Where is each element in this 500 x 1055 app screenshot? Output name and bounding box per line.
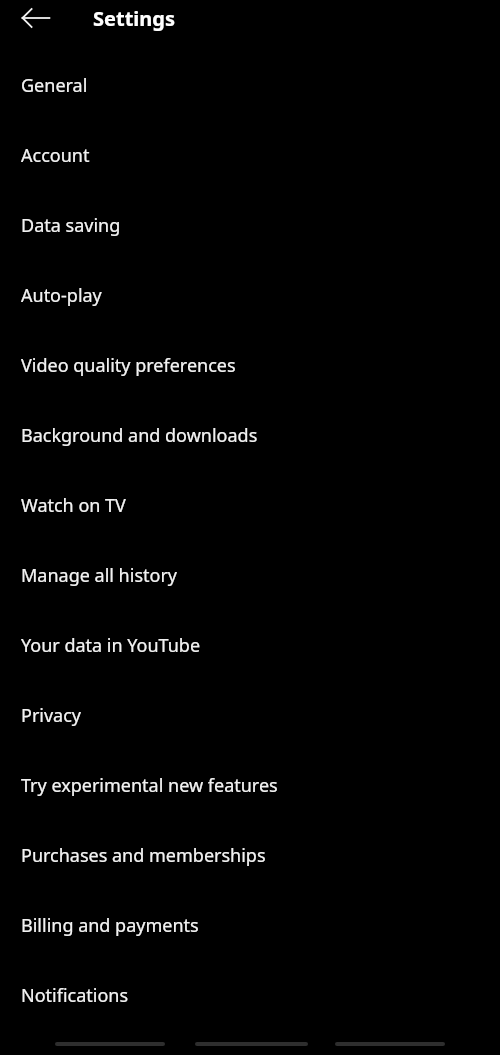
- button[interactable]: Your data in YouTube: [0, 610, 500, 680]
- button[interactable]: Privacy: [0, 680, 500, 750]
- button[interactable]: Watch on TV: [0, 470, 500, 540]
- button[interactable]: Background and downloads: [0, 400, 500, 470]
- button[interactable]: Try experimental new features: [0, 750, 500, 820]
- staticText: Settings: [93, 5, 175, 32]
- button[interactable]: Auto-play: [0, 260, 500, 330]
- button[interactable]: Back: [12, 0, 60, 36]
- staticText: Watch on TV: [21, 493, 126, 518]
- staticText: Data saving: [21, 213, 121, 238]
- staticText: Notifications: [21, 983, 129, 1008]
- button[interactable]: Video quality preferences: [0, 330, 500, 400]
- staticText: Billing and payments: [21, 913, 199, 938]
- staticText: Privacy: [21, 703, 82, 728]
- staticText: Try experimental new features: [21, 773, 278, 798]
- staticText: Video quality preferences: [21, 353, 236, 378]
- staticText: General: [21, 73, 88, 98]
- staticText: Manage all history: [21, 563, 178, 588]
- button[interactable]: Manage all history: [0, 540, 500, 610]
- button[interactable]: Account: [0, 120, 500, 190]
- staticText: Background and downloads: [21, 423, 258, 448]
- button[interactable]: Data saving: [0, 190, 500, 260]
- button[interactable]: Billing and payments: [0, 890, 500, 960]
- staticText: Account: [21, 143, 90, 168]
- staticText: Your data in YouTube: [21, 633, 201, 658]
- button[interactable]: Purchases and memberships: [0, 820, 500, 890]
- button[interactable]: General: [0, 50, 500, 120]
- button[interactable]: Notifications: [0, 960, 500, 1030]
- staticText: Auto-play: [21, 283, 102, 308]
- staticText: Purchases and memberships: [21, 843, 266, 868]
